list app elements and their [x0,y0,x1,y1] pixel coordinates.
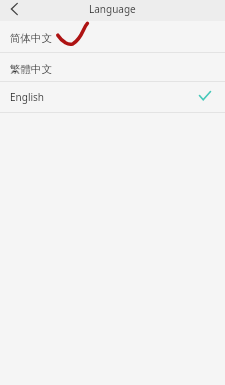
button[interactable]: 简体中文 [0,21,225,52]
staticText: 繁體中文 [10,63,52,76]
staticText: English [10,90,45,104]
staticText: Language [89,2,136,16]
staticText: 简体中文 [10,32,52,45]
button[interactable]: English [0,82,225,112]
button[interactable]: 繁體中文 [0,53,225,81]
button[interactable] [0,0,28,21]
